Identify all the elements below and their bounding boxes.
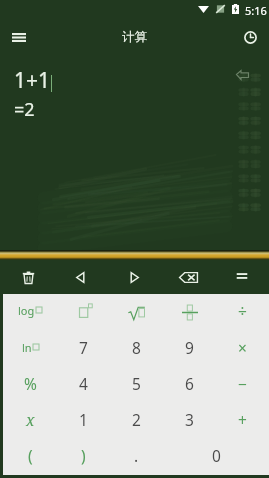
staticText: 7 [79, 337, 88, 358]
button[interactable] [57, 294, 110, 331]
button[interactable]: Equals [215, 260, 269, 294]
staticText: 8 [132, 337, 141, 358]
button[interactable]: ( [3, 439, 57, 475]
staticText: ÷ [238, 300, 247, 321]
staticText: 1+1 [14, 66, 51, 95]
button[interactable]: 1 [57, 403, 110, 439]
button[interactable]: 6 [163, 367, 216, 403]
button[interactable]: ) [57, 439, 110, 475]
button[interactable]: x [3, 403, 57, 439]
staticText: 5 [132, 373, 141, 394]
staticText: 0 [212, 445, 221, 466]
button[interactable] [163, 294, 216, 331]
staticText: =2 [14, 97, 35, 122]
button[interactable]: ÷ [216, 294, 269, 331]
staticText: 6 [185, 373, 194, 394]
button[interactable]: % [3, 367, 57, 403]
staticText: x [26, 409, 35, 430]
button[interactable]: 5 [110, 367, 163, 403]
button[interactable]: 9 [163, 331, 216, 367]
staticText: log [18, 303, 35, 318]
button[interactable]: log [3, 294, 57, 331]
button[interactable]: Move cursor right [107, 260, 161, 294]
button[interactable]: 7 [57, 331, 110, 367]
staticText: ) [81, 445, 86, 466]
button[interactable]: Menu [5, 18, 33, 56]
staticText: % [24, 373, 37, 394]
staticText: 1 [79, 409, 88, 430]
button[interactable]: History [236, 18, 264, 56]
button[interactable]: . [110, 439, 163, 475]
staticText: − [238, 373, 247, 394]
button[interactable]: 8 [110, 331, 163, 367]
button[interactable]: − [216, 367, 269, 403]
staticText: × [238, 337, 247, 358]
staticText: 2 [132, 409, 141, 430]
staticText: 5:16 [245, 3, 267, 15]
staticText: + [238, 409, 247, 430]
staticText: ln [22, 340, 32, 355]
button[interactable]: 2 [110, 403, 163, 439]
staticText: 4 [79, 373, 88, 394]
button[interactable]: + [216, 403, 269, 439]
button[interactable]: 4 [57, 367, 110, 403]
staticText: . [134, 445, 139, 466]
button[interactable]: Clear [0, 260, 53, 294]
button[interactable]: ln [3, 331, 57, 367]
button[interactable]: × [216, 331, 269, 367]
staticText: ( [28, 445, 33, 466]
button[interactable]: Backspace [161, 260, 215, 294]
staticText: 9 [185, 337, 194, 358]
button[interactable]: 3 [163, 403, 216, 439]
button[interactable]: 0 [163, 439, 269, 475]
staticText: 3 [185, 409, 194, 430]
staticText: 计算 [122, 29, 147, 45]
button[interactable]: Move cursor left [53, 260, 107, 294]
button[interactable] [110, 294, 163, 331]
